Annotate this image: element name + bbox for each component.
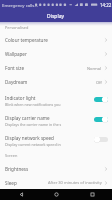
button[interactable]: Display network speed [0,129,112,149]
button[interactable]: Sleep [0,176,112,189]
staticText: Daydream [5,79,28,85]
staticText: Sleep [5,180,17,186]
staticText: Blink when new notifications you [5,102,61,107]
staticText: Normal [87,66,102,71]
button[interactable]: Home [41,189,71,200]
button[interactable]: Wallpaper [0,47,112,61]
staticText: After 30 minutes of inactivity [48,180,102,185]
staticText: Indicator light [5,95,36,101]
staticText: Personalised [5,25,29,30]
button[interactable]: Back [6,189,36,200]
button[interactable]: Colour temperature [0,33,112,47]
button[interactable]: Brightness [0,162,112,176]
staticText: Wallpaper [5,51,27,57]
staticText: Display [47,13,65,20]
button[interactable]: Font size [0,61,112,75]
button[interactable]: Daydream [0,75,112,89]
staticText: Colour temperature [5,37,48,43]
button[interactable]: Display carrier name [0,109,112,129]
staticText: 14:22 [100,2,112,8]
staticText: Emergency calls... [2,2,38,8]
button[interactable]: Indicator light [0,89,112,109]
button[interactable]: Recent apps [77,189,107,200]
staticText: Font size [5,65,24,71]
staticText: Display current network speed in [5,142,61,147]
staticText: Display carrier name [5,115,50,121]
staticText: Screen [5,153,18,158]
staticText: Brightness [5,166,29,172]
staticText: Displays the carrier name in the s [5,122,62,127]
staticText: Off [96,80,102,85]
staticText: Display network speed [5,135,54,141]
